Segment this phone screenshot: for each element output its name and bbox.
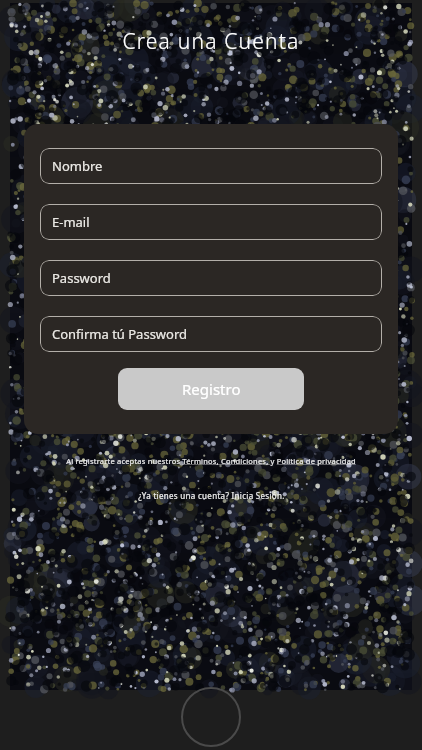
staticText: Password xyxy=(52,269,111,287)
staticText: E-mail xyxy=(52,213,90,231)
staticText: Crea una Cuenta xyxy=(122,27,300,56)
staticText: Confirma tú Password xyxy=(52,325,188,343)
staticText: Nombre xyxy=(52,157,103,175)
button[interactable]: Al registrarte aceptas nuestros Términos… xyxy=(28,456,394,466)
button[interactable]: Home xyxy=(180,686,242,748)
staticText: Al registrarte aceptas nuestros Términos… xyxy=(66,456,356,466)
button[interactable]: ¿Ya tienes una cuenta? Inicia Sesión. xyxy=(10,490,412,501)
button[interactable]: Nombre xyxy=(40,148,382,184)
button[interactable]: Confirma tú Password xyxy=(40,316,382,352)
staticText: ¿Ya tienes una cuenta? Inicia Sesión. xyxy=(138,490,285,501)
button[interactable]: Password xyxy=(40,260,382,296)
button[interactable]: E-mail xyxy=(40,204,382,240)
staticText: Registro xyxy=(182,379,241,399)
button[interactable]: Registro xyxy=(118,368,304,410)
